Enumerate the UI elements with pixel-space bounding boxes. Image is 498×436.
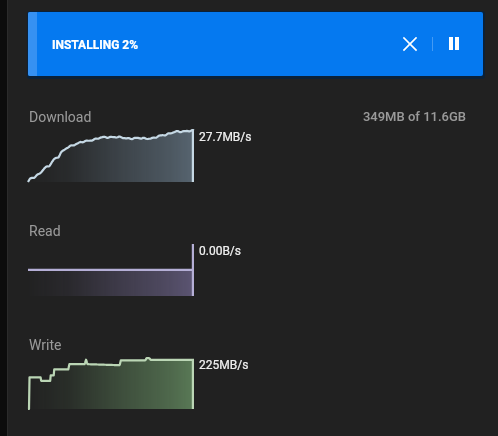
staticText: INSTALLING 2% (52, 38, 139, 52)
button[interactable]: Cancel (398, 32, 422, 56)
staticText: 349MB of 11.6GB (302, 109, 466, 124)
staticText: Download (29, 109, 92, 125)
staticText: 27.7MB/s (199, 130, 252, 144)
button[interactable]: Pause (442, 31, 466, 55)
staticText: Read (29, 223, 61, 239)
staticText: Write (29, 337, 62, 353)
button[interactable]: INSTALLING 2% (28, 12, 483, 76)
staticText: 225MB/s (199, 358, 249, 372)
staticText: 0.00B/s (199, 244, 242, 258)
